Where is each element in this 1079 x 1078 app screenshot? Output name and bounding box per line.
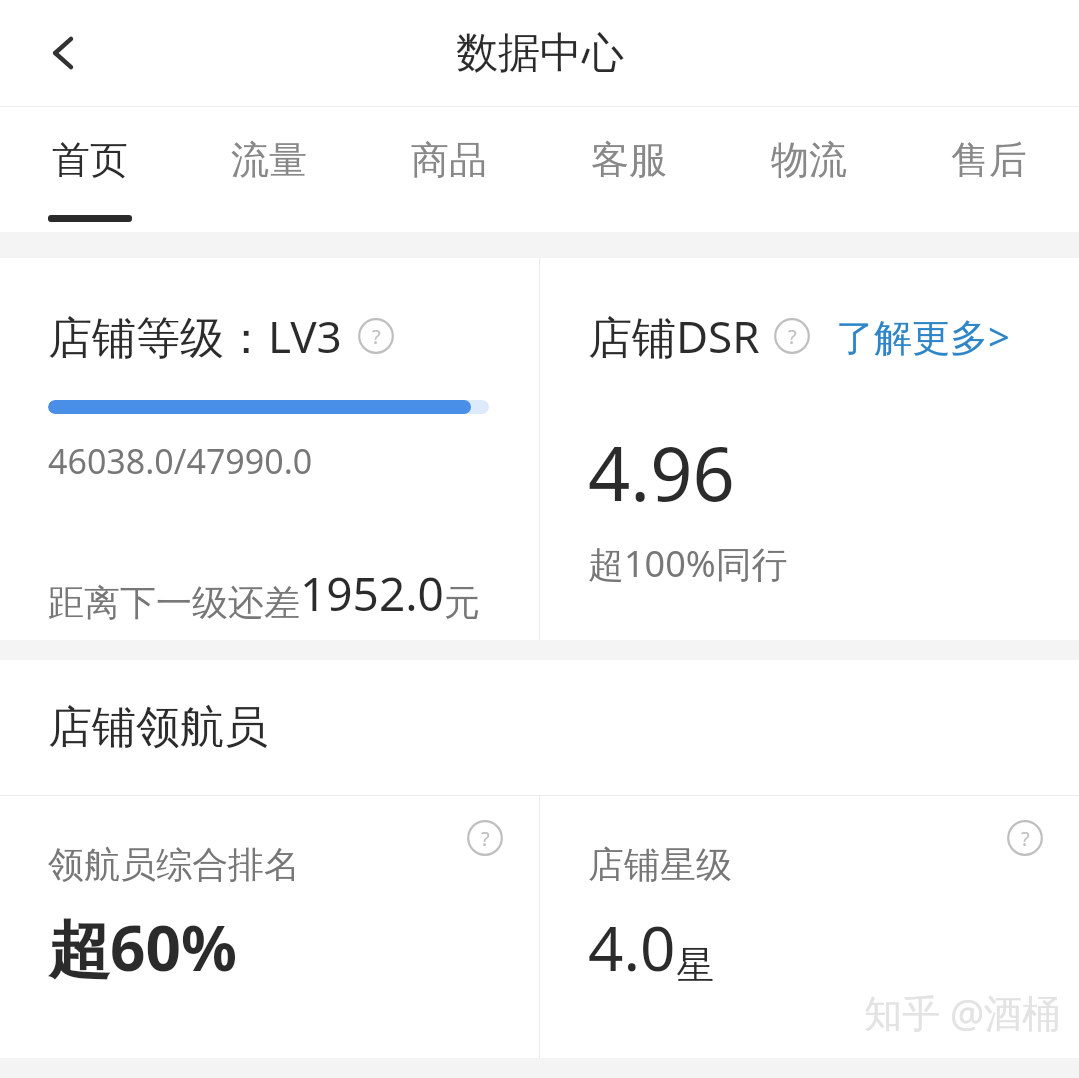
staticText: 1952.0 [300,562,444,625]
staticText: 超60% [48,905,237,990]
button[interactable]: Help [774,318,810,354]
staticText: 了解更多> [836,310,1010,362]
button[interactable]: 客服 [539,107,719,232]
staticText: 4.0 [588,905,676,989]
staticText: 店铺等级：LV3 [48,306,342,366]
staticText: ? [372,323,381,350]
button[interactable]: 首页 [0,107,179,232]
button[interactable]: 商品 [359,107,539,232]
staticText: 4.96 [588,422,735,523]
button[interactable]: 了解更多> [836,310,1010,362]
button[interactable]: 领航员综合排名 [0,796,539,1058]
staticText: 客服 [591,136,667,184]
staticText: 领航员综合排名 [48,842,300,887]
staticText: 46038.0/47990.0 [48,438,313,484]
button[interactable]: Help [358,318,394,354]
button[interactable]: 店铺DSR [540,258,1079,640]
staticText: 数据中心 [456,27,624,80]
button[interactable]: Help [1007,820,1043,856]
button[interactable]: 流量 [179,107,359,232]
button[interactable]: 售后 [899,107,1079,232]
staticText: 物流 [771,136,847,184]
staticText: 星 [676,941,714,989]
staticText: 首页 [52,136,128,184]
staticText: ? [481,825,490,852]
staticText: 流量 [231,136,307,184]
staticText: 商品 [411,136,487,184]
staticText: 店铺DSR [588,306,760,366]
button[interactable]: 店铺星级 [540,796,1079,1058]
staticText: ? [1021,825,1030,852]
button[interactable]: 物流 [719,107,899,232]
staticText: 元 [444,580,480,625]
staticText: 超100%同行 [588,539,788,588]
button[interactable]: Help [467,820,503,856]
staticText: 距离下一级还差 [48,580,300,625]
button[interactable]: 店铺等级：LV3 [0,258,539,640]
button[interactable]: Back [20,9,108,97]
staticText: 店铺领航员 [48,700,268,755]
staticText: 知乎 @酒桶 [864,986,1061,1038]
staticText: 店铺星级 [588,842,732,887]
staticText: 售后 [951,136,1027,184]
staticText: ? [788,323,797,350]
